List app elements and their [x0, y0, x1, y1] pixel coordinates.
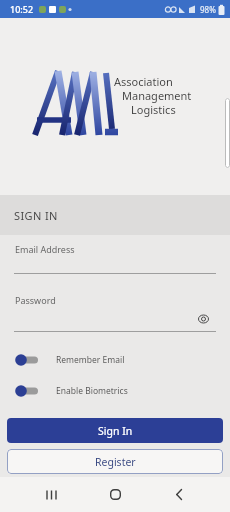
- button[interactable]: Remember Email: [14, 353, 125, 367]
- staticText: Logistics: [131, 102, 176, 117]
- button[interactable]: [31, 477, 71, 512]
- staticText: Management: [122, 88, 192, 103]
- button[interactable]: Enable Biometrics: [14, 384, 128, 398]
- staticText: Register: [95, 455, 136, 469]
- staticText: SIGN IN: [14, 208, 58, 223]
- staticText: 10:52: [10, 3, 34, 15]
- button[interactable]: [194, 310, 213, 328]
- staticText: 98%: [200, 4, 216, 15]
- staticText: Sign In: [98, 424, 133, 438]
- staticText: Password: [15, 294, 56, 306]
- button[interactable]: Password: [0, 294, 230, 332]
- button[interactable]: Register: [7, 449, 223, 474]
- staticText: Association: [114, 74, 173, 89]
- button[interactable]: [95, 477, 135, 512]
- button[interactable]: Sign In: [7, 418, 223, 443]
- staticText: Remember Email: [56, 354, 125, 366]
- staticText: Email Address: [15, 243, 75, 255]
- button[interactable]: Email Address: [0, 243, 230, 274]
- button[interactable]: [159, 477, 199, 512]
- staticText: Enable Biometrics: [56, 385, 128, 397]
